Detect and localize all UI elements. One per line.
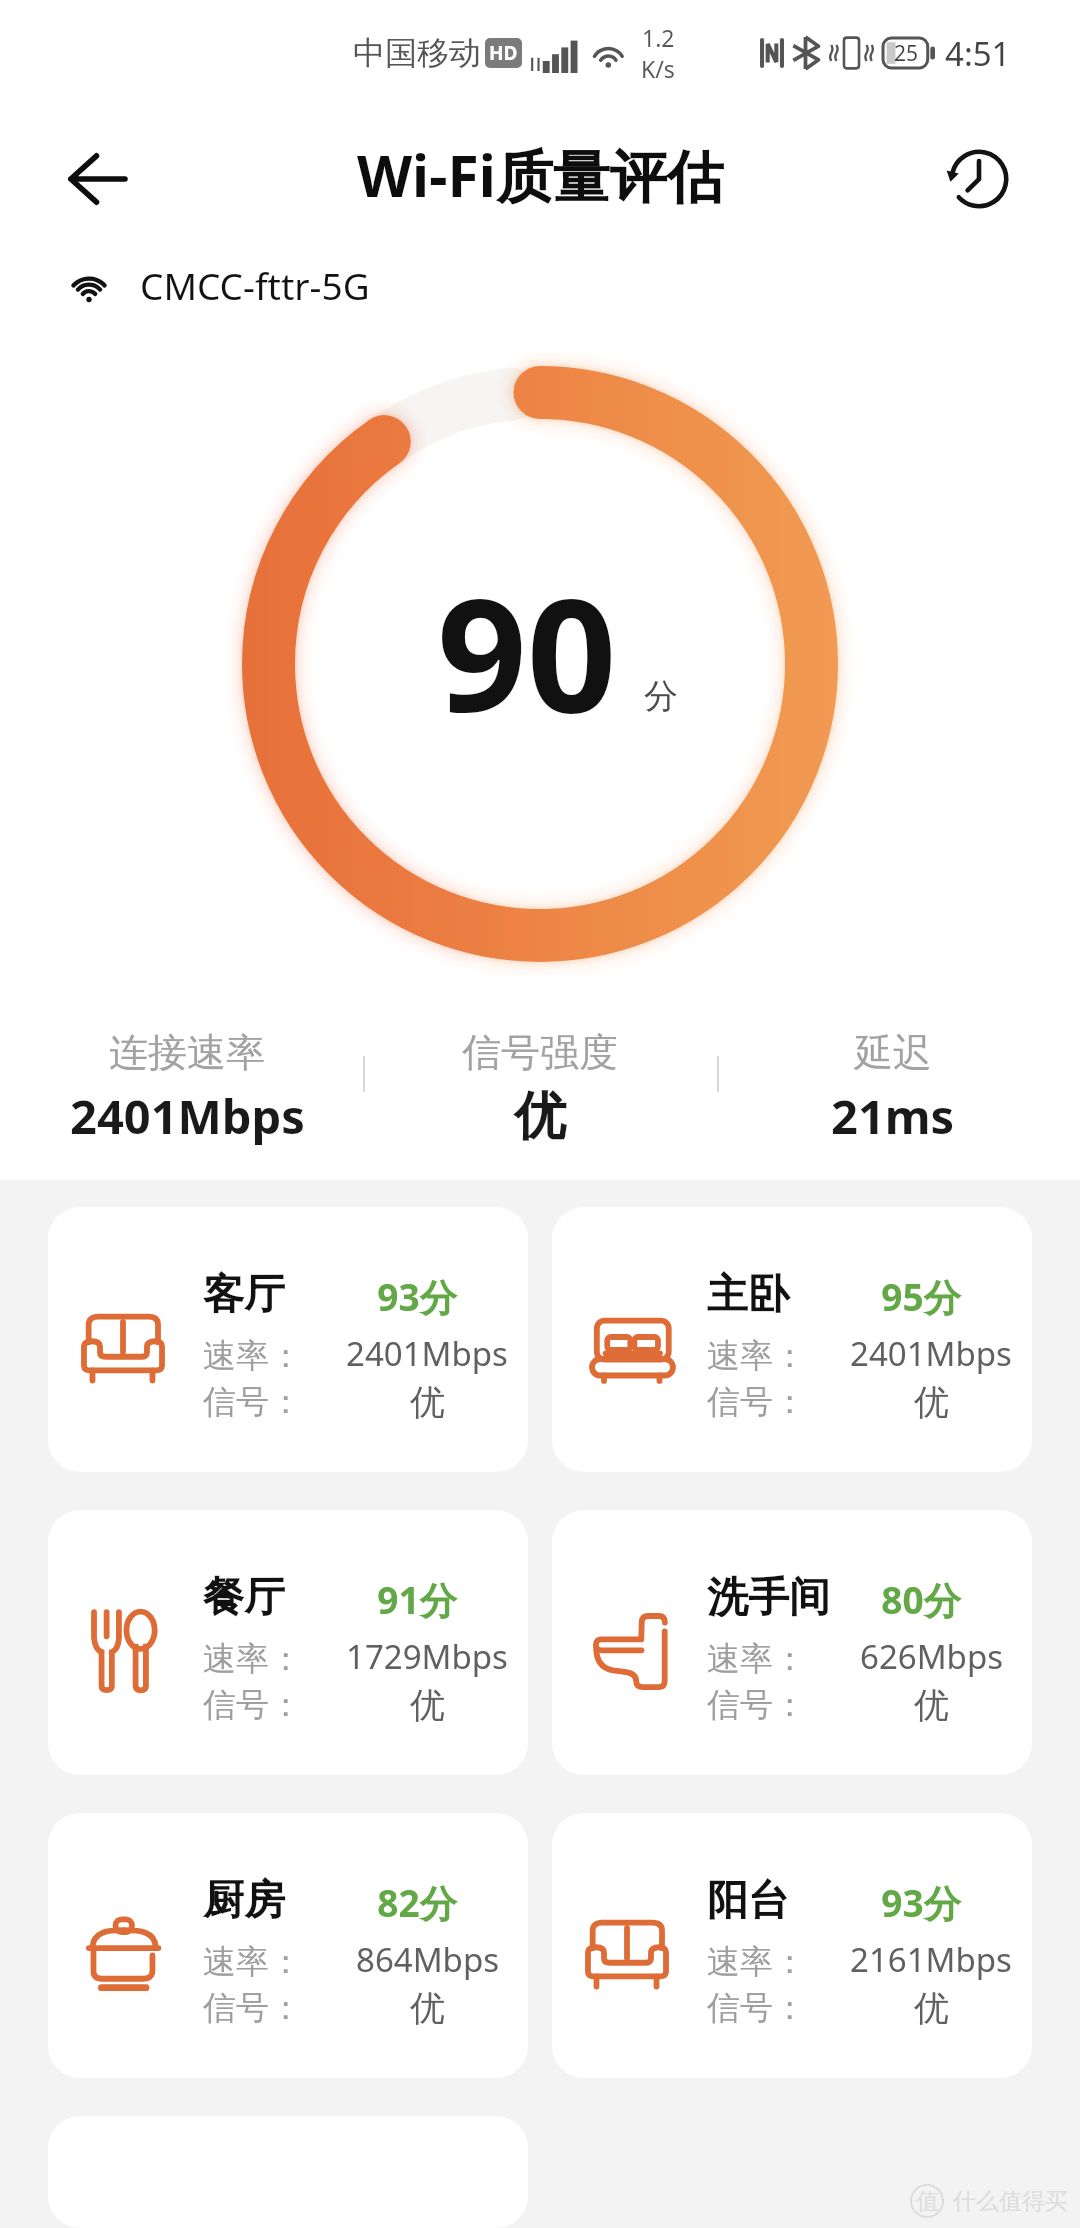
staticText: 优 bbox=[410, 1683, 445, 1727]
staticText: 值 bbox=[916, 2187, 939, 2216]
staticText: 4:51 bbox=[945, 31, 1011, 76]
staticText: 2401Mbps bbox=[850, 1331, 1012, 1376]
button[interactable]: Back bbox=[41, 124, 151, 234]
staticText: 速率： bbox=[707, 1335, 806, 1377]
staticText: 速率： bbox=[707, 1941, 806, 1983]
staticText: HD bbox=[489, 40, 518, 66]
staticText: 洗手间 bbox=[707, 1572, 830, 1624]
staticText: 速率： bbox=[707, 1638, 806, 1680]
button[interactable]: 阳台 bbox=[552, 1813, 1032, 2078]
staticText: 626Mbps bbox=[860, 1634, 1003, 1679]
staticText: 客厅 bbox=[203, 1269, 285, 1321]
button[interactable]: 餐厅 bbox=[48, 1510, 528, 1775]
button[interactable]: 客厅 bbox=[48, 1207, 528, 1472]
staticText: 信号： bbox=[707, 1987, 806, 2029]
staticText: 93分 bbox=[297, 1271, 528, 1322]
staticText: 82分 bbox=[297, 1877, 528, 1928]
staticText: 90 bbox=[437, 544, 617, 758]
staticText: 阳台 bbox=[707, 1875, 789, 1927]
staticText: CMCC-fttr-5G bbox=[140, 260, 370, 310]
staticText: 分 bbox=[644, 675, 678, 718]
staticText: 速率： bbox=[203, 1941, 302, 1983]
staticText: 信号强度 bbox=[462, 1028, 618, 1077]
staticText: 中国移动 bbox=[353, 33, 481, 73]
staticText: 优 bbox=[914, 1986, 949, 2030]
button[interactable]: 洗手间 bbox=[552, 1510, 1032, 1775]
staticText: 速率： bbox=[203, 1638, 302, 1680]
staticText: 优 bbox=[410, 1986, 445, 2030]
staticText: 1729Mbps bbox=[346, 1634, 508, 1679]
staticText: 什么值得买 bbox=[953, 2187, 1068, 2216]
button[interactable]: History bbox=[924, 124, 1034, 234]
staticText: K/s bbox=[641, 53, 675, 84]
staticText: 1.2 bbox=[642, 22, 675, 53]
staticText: 延迟 bbox=[854, 1028, 932, 1077]
staticText: 信号： bbox=[203, 1381, 302, 1423]
staticText: 2401Mbps bbox=[70, 1084, 305, 1148]
staticText: 优 bbox=[914, 1380, 949, 1424]
staticText: 21ms bbox=[831, 1084, 955, 1148]
staticText: 91分 bbox=[297, 1574, 528, 1625]
staticText: 2161Mbps bbox=[850, 1937, 1012, 1982]
staticText: Wi-Fi质量评估 bbox=[357, 136, 724, 214]
staticText: 93分 bbox=[801, 1877, 1032, 1928]
staticText: 连接速率 bbox=[109, 1028, 265, 1077]
staticText: 信号： bbox=[707, 1684, 806, 1726]
staticText: 2401Mbps bbox=[346, 1331, 508, 1376]
staticText: 厨房 bbox=[203, 1875, 285, 1927]
staticText: 信号： bbox=[203, 1684, 302, 1726]
staticText: 信号： bbox=[203, 1987, 302, 2029]
staticText: 信号： bbox=[707, 1381, 806, 1423]
button[interactable]: 厨房 bbox=[48, 1813, 528, 2078]
staticText: 餐厅 bbox=[203, 1572, 285, 1624]
staticText: 优 bbox=[914, 1683, 949, 1727]
staticText: 80分 bbox=[801, 1574, 1032, 1625]
staticText: 优 bbox=[410, 1380, 445, 1424]
staticText: 864Mbps bbox=[356, 1937, 499, 1982]
staticText: 25 bbox=[894, 39, 919, 68]
button[interactable]: 主卧 bbox=[552, 1207, 1032, 1472]
staticText: 速率： bbox=[203, 1335, 302, 1377]
staticText: 主卧 bbox=[707, 1269, 789, 1321]
staticText: 优 bbox=[514, 1084, 566, 1150]
staticText: 95分 bbox=[801, 1271, 1032, 1322]
